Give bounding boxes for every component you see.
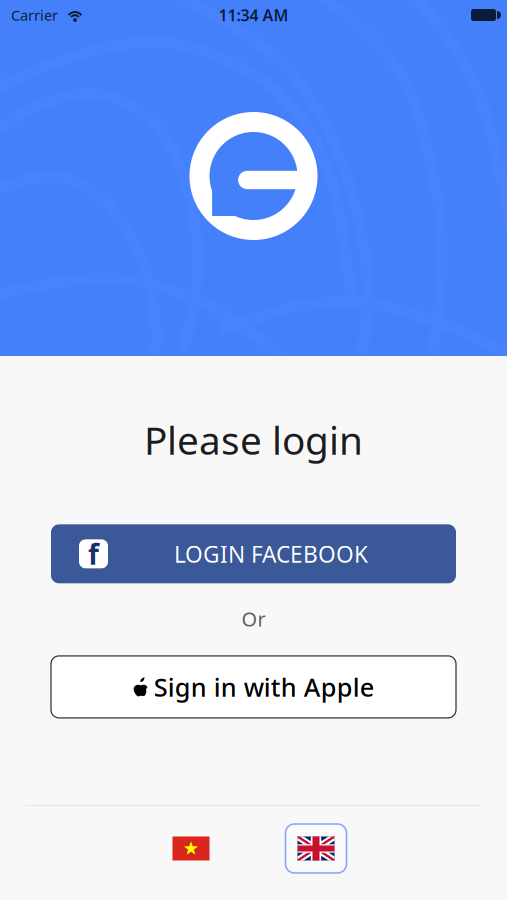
staticText: f bbox=[88, 535, 99, 572]
staticText: Carrier bbox=[11, 5, 58, 25]
button[interactable]: Switch language to English bbox=[285, 824, 346, 873]
staticText: 11:34 AM bbox=[218, 4, 288, 26]
staticText: LOGIN FACEBOOK bbox=[174, 539, 368, 569]
staticText: Sign in with Apple bbox=[154, 670, 375, 704]
staticText: Please login bbox=[144, 414, 363, 465]
button[interactable]: Switch language to Vietnamese bbox=[160, 824, 221, 873]
button[interactable]: f bbox=[51, 524, 456, 583]
button[interactable]: Sign in with Apple bbox=[51, 656, 456, 718]
staticText: Or bbox=[241, 605, 265, 632]
